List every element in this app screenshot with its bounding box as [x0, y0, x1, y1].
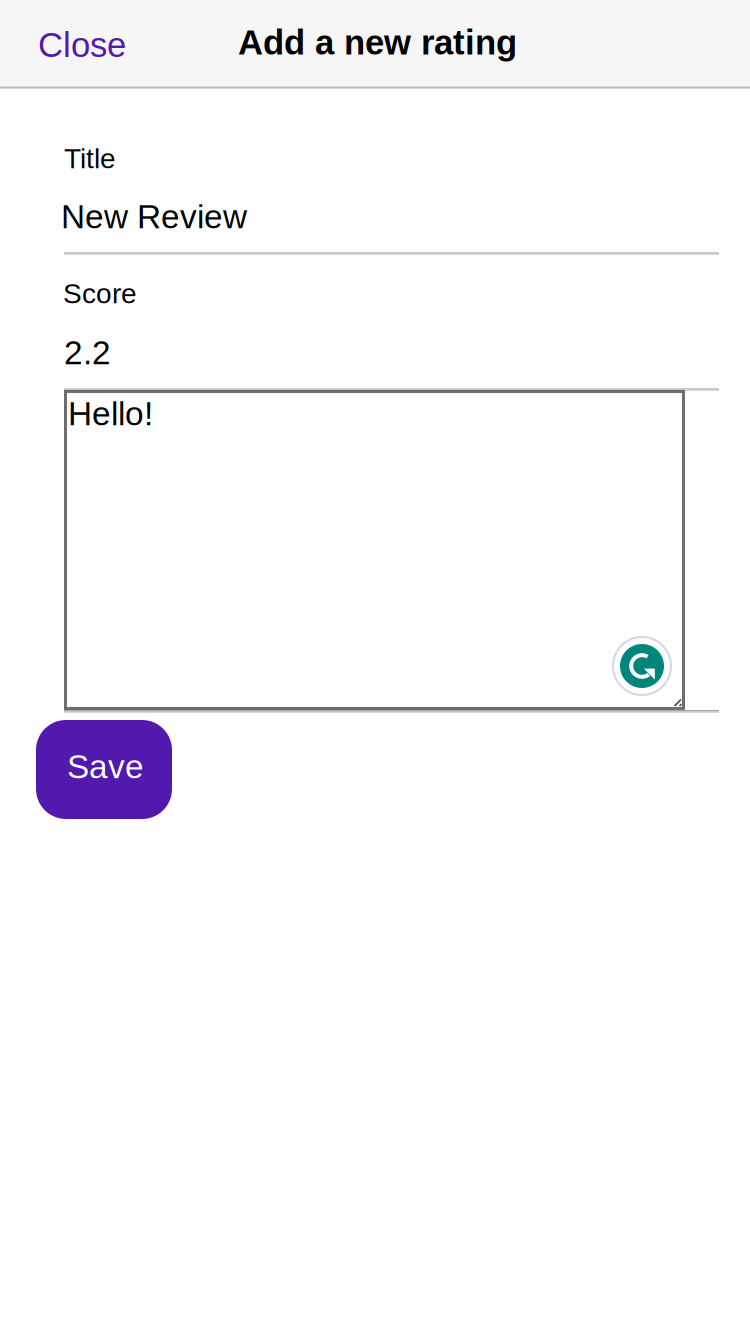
staticText: Save: [67, 748, 144, 785]
staticText: 2.2: [64, 334, 111, 371]
button[interactable]: New Review: [64, 184, 719, 255]
button[interactable]: Grammarly: [613, 637, 671, 695]
staticText: New Review: [61, 198, 247, 235]
staticText: Title: [64, 143, 116, 174]
button[interactable]: Close: [0, 0, 162, 86]
staticText: Add a new rating: [238, 23, 517, 62]
staticText: Hello!: [68, 395, 153, 432]
button[interactable]: Hello!: [64, 390, 685, 710]
staticText: Close: [38, 25, 126, 64]
button[interactable]: 2.2: [64, 320, 719, 391]
button[interactable]: Save: [36, 720, 172, 819]
staticText: Score: [63, 278, 137, 309]
